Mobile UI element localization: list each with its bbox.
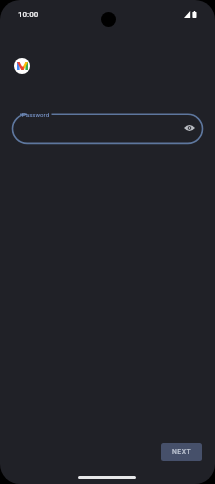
button[interactable]: Gmail <box>14 58 30 74</box>
button[interactable]: Password <box>12 112 204 146</box>
button[interactable]: NEXT <box>161 443 202 461</box>
button[interactable]: Show password <box>178 117 200 139</box>
staticText: 10:00 <box>18 10 39 19</box>
staticText: NEXT <box>172 448 192 456</box>
staticText: Password <box>22 110 50 117</box>
